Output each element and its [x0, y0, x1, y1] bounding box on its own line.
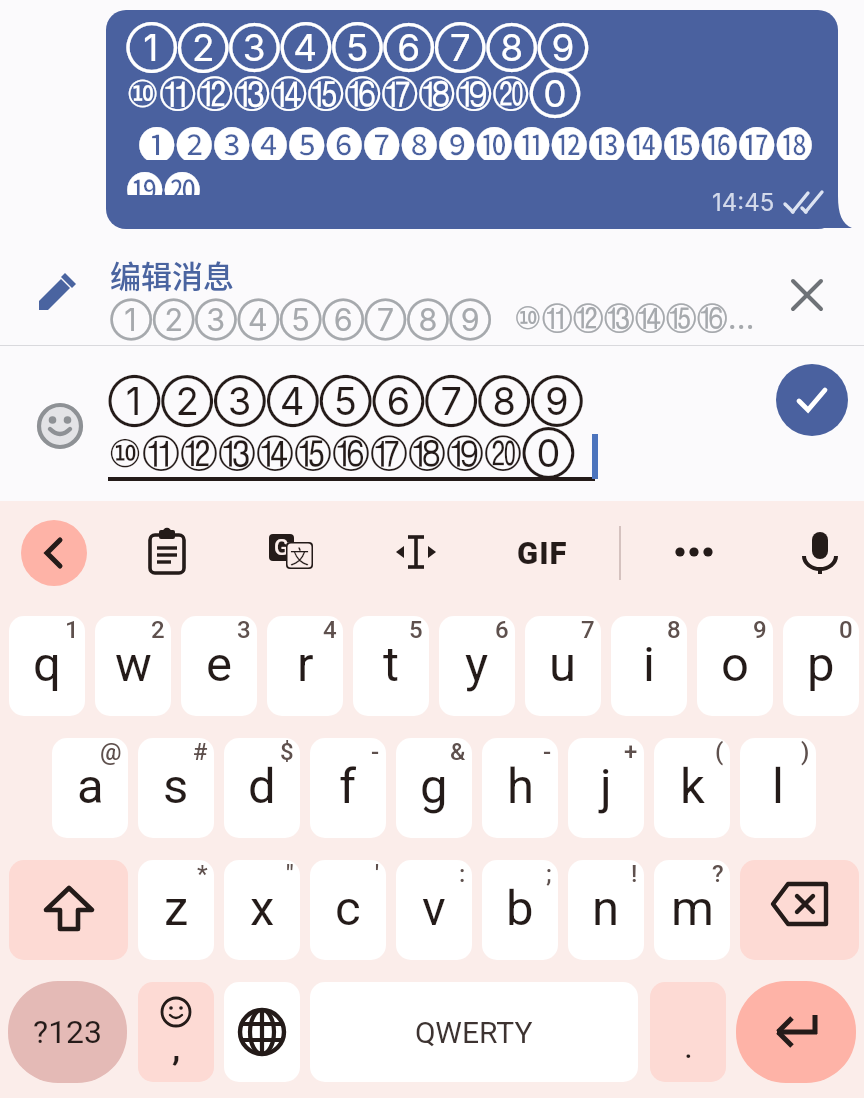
button[interactable]: 2 — [95, 616, 171, 716]
button[interactable]: 7 — [525, 616, 601, 716]
staticText: p — [807, 636, 835, 693]
button[interactable]: Backspace — [740, 860, 859, 960]
staticText: 5 — [409, 616, 423, 644]
staticText: " — [286, 860, 294, 888]
staticText: w — [115, 636, 152, 693]
staticText: 6 — [495, 616, 509, 644]
staticText: ①②③④⑤⑥⑦⑧⑨ — [110, 301, 492, 338]
button[interactable]: GIF — [500, 520, 584, 586]
button[interactable]: + — [568, 738, 644, 838]
staticText: h — [507, 758, 534, 815]
button[interactable]: 5 — [353, 616, 429, 716]
staticText: ⑩⑪⑫⑬⑭⑮⑯… — [514, 299, 755, 338]
staticText: 14:45 — [712, 188, 775, 217]
staticText: o — [721, 636, 749, 693]
staticText: ( — [715, 738, 724, 766]
staticText: ⓳⓴ — [126, 160, 201, 195]
staticText: 文 — [290, 542, 310, 569]
button[interactable]: Emoji — [138, 982, 214, 1082]
button[interactable]: $ — [224, 738, 300, 838]
staticText: - — [543, 738, 552, 766]
button[interactable]: QWERTY — [310, 982, 638, 1082]
staticText: c — [335, 880, 361, 937]
staticText: ①②③④⑤⑥⑦⑧⑨ — [108, 378, 584, 424]
staticText: + — [624, 738, 638, 766]
button[interactable]: . — [650, 982, 726, 1082]
button[interactable]: ; — [482, 860, 558, 960]
button[interactable]: Clipboard — [134, 520, 200, 586]
button[interactable]: * — [138, 860, 214, 960]
button[interactable]: Shift — [9, 860, 128, 960]
button[interactable]: 9 — [697, 616, 773, 716]
button[interactable]: More options — [661, 520, 727, 586]
staticText: y — [465, 636, 489, 693]
staticText: G — [274, 535, 289, 561]
staticText: ①②③④⑤⑥⑦⑧⑨ — [126, 25, 589, 70]
staticText: 7 — [581, 616, 595, 644]
staticText: 2 — [151, 616, 165, 644]
button[interactable]: ) — [740, 738, 816, 838]
staticText: ?123 — [33, 1013, 103, 1051]
staticText: ) — [801, 738, 810, 766]
staticText: 8 — [667, 616, 681, 644]
staticText: v — [422, 880, 446, 937]
button[interactable]: Save edit — [776, 364, 848, 436]
button[interactable]: @ — [52, 738, 128, 838]
staticText: ? — [712, 860, 724, 888]
staticText: e — [206, 636, 232, 693]
staticText: n — [592, 880, 620, 937]
button[interactable]: ' — [310, 860, 386, 960]
button[interactable]: - — [482, 738, 558, 838]
button[interactable]: & — [396, 738, 472, 838]
button[interactable]: " — [224, 860, 300, 960]
button[interactable]: ①②③④⑤⑥⑦⑧⑨ — [106, 10, 838, 229]
staticText: ❶❷❸❹❺❻❼❽❾❿⓫⓬⓭⓮⓯⓰⓱⓲ — [138, 115, 813, 160]
staticText: ⑩⑪⑫⑬⑭⑮⑯⑰⑱⑲⑳⓪ — [108, 430, 575, 478]
button[interactable]: Move cursor — [384, 520, 450, 586]
button[interactable]: : — [396, 860, 472, 960]
button[interactable]: ! — [568, 860, 644, 960]
staticText: ' — [375, 860, 380, 888]
button[interactable]: 4 — [267, 616, 343, 716]
button[interactable]: # — [138, 738, 214, 838]
staticText: ! — [631, 860, 638, 888]
staticText: l — [772, 758, 784, 815]
button[interactable]: Enter — [736, 981, 856, 1083]
button[interactable]: Voice input — [787, 520, 853, 586]
button[interactable]: 6 — [439, 616, 515, 716]
staticText: @ — [100, 738, 122, 766]
staticText: f — [339, 758, 357, 815]
button[interactable]: 1 — [9, 616, 85, 716]
staticText: $ — [280, 738, 294, 766]
staticText: 编辑消息 — [110, 252, 234, 297]
button[interactable]: 0 — [783, 616, 859, 716]
staticText: : — [459, 860, 466, 888]
staticText: 0 — [839, 616, 853, 644]
staticText: j — [600, 758, 612, 815]
button[interactable]: Cancel edit — [772, 260, 842, 330]
button[interactable]: ? — [654, 860, 730, 960]
button[interactable]: Translate — [259, 520, 325, 586]
staticText: i — [643, 636, 655, 693]
button[interactable]: Change language — [224, 982, 300, 1082]
staticText: s — [163, 758, 189, 815]
staticText: q — [33, 636, 61, 693]
button[interactable]: - — [310, 738, 386, 838]
button[interactable]: 3 — [181, 616, 257, 716]
staticText: 4 — [323, 616, 337, 644]
button[interactable]: 编辑消息 — [0, 242, 864, 345]
staticText: k — [680, 758, 705, 815]
button[interactable]: ?123 — [8, 981, 127, 1083]
button[interactable]: 8 — [611, 616, 687, 716]
staticText: , — [172, 1028, 181, 1068]
staticText: QWERTY — [415, 1015, 533, 1050]
staticText: # — [193, 738, 208, 766]
staticText: ; — [546, 860, 552, 888]
staticText: a — [77, 758, 104, 815]
button[interactable]: ( — [654, 738, 730, 838]
staticText: GIF — [517, 535, 568, 571]
button[interactable]: Emoji — [24, 390, 96, 462]
staticText: x — [250, 880, 275, 937]
button[interactable]: Back — [21, 520, 87, 586]
staticText: & — [450, 738, 466, 766]
